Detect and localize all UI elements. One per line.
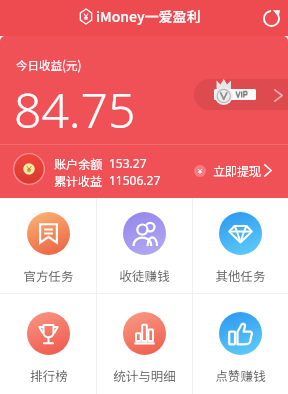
staticText: 累计收益 <box>54 172 103 189</box>
button[interactable]: 点赞赚钱 <box>193 294 288 394</box>
staticText: 账户余额 <box>54 155 103 172</box>
staticText: 其他任务 <box>215 266 266 284</box>
staticText: 点赞赚钱 <box>215 366 266 384</box>
staticText: 立即提现 <box>213 162 262 179</box>
staticText: 84.75 <box>14 77 136 142</box>
button[interactable]: 官方任务 <box>0 198 96 293</box>
staticText: 收徒赚钱 <box>119 266 170 284</box>
button[interactable]: 收徒赚钱 <box>97 198 192 293</box>
staticText: 11506.27 <box>109 172 161 188</box>
staticText: 官方任务 <box>23 266 74 284</box>
staticText: iMoney一爱盈利 <box>96 6 201 26</box>
button[interactable]: 其他任务 <box>193 198 288 293</box>
button[interactable]: VIP <box>214 79 256 104</box>
staticText: 今日收益(元) <box>16 57 82 74</box>
button[interactable]: 立即提现 <box>194 162 272 179</box>
staticText: 153.27 <box>109 155 147 171</box>
button[interactable]: Refresh <box>258 5 284 31</box>
button[interactable]: 排行榜 <box>0 294 96 394</box>
staticText: 排行榜 <box>30 366 68 384</box>
button[interactable]: 统计与明细 <box>97 294 192 394</box>
staticText: 统计与明细 <box>113 366 176 384</box>
